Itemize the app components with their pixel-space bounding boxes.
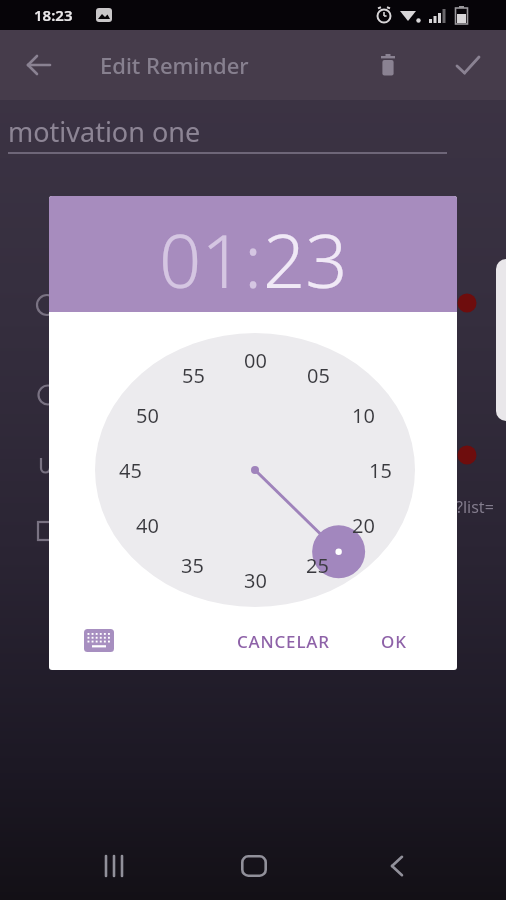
staticText: 20: [352, 512, 375, 538]
button[interactable]: [446, 44, 490, 86]
button[interactable]: [366, 44, 410, 86]
staticText: 50: [136, 402, 159, 428]
staticText: 30: [244, 567, 267, 593]
staticText: 00: [244, 347, 267, 373]
button[interactable]: OK: [368, 621, 420, 661]
staticText: motivation one: [8, 113, 201, 150]
button[interactable]: [73, 617, 125, 663]
button[interactable]: [90, 842, 138, 890]
staticText: 55: [182, 362, 205, 388]
staticText: ?list=: [456, 496, 494, 516]
staticText: :: [244, 209, 263, 310]
staticText: 45: [119, 457, 142, 483]
staticText: 23: [263, 209, 348, 310]
staticText: CANCELAR: [237, 630, 330, 653]
staticText: 01: [159, 209, 244, 310]
button[interactable]: CANCELAR: [228, 621, 338, 661]
button[interactable]: [372, 842, 420, 890]
staticText: 10: [352, 402, 375, 428]
staticText: 25: [306, 552, 329, 578]
staticText: 05: [307, 362, 330, 388]
staticText: OK: [381, 630, 407, 653]
staticText: 15: [369, 457, 392, 483]
button[interactable]: [230, 842, 278, 890]
staticText: 40: [136, 512, 159, 538]
staticText: 35: [181, 552, 204, 578]
staticText: 18:23: [34, 5, 73, 25]
button[interactable]: [18, 44, 60, 86]
staticText: Edit Reminder: [100, 50, 249, 80]
